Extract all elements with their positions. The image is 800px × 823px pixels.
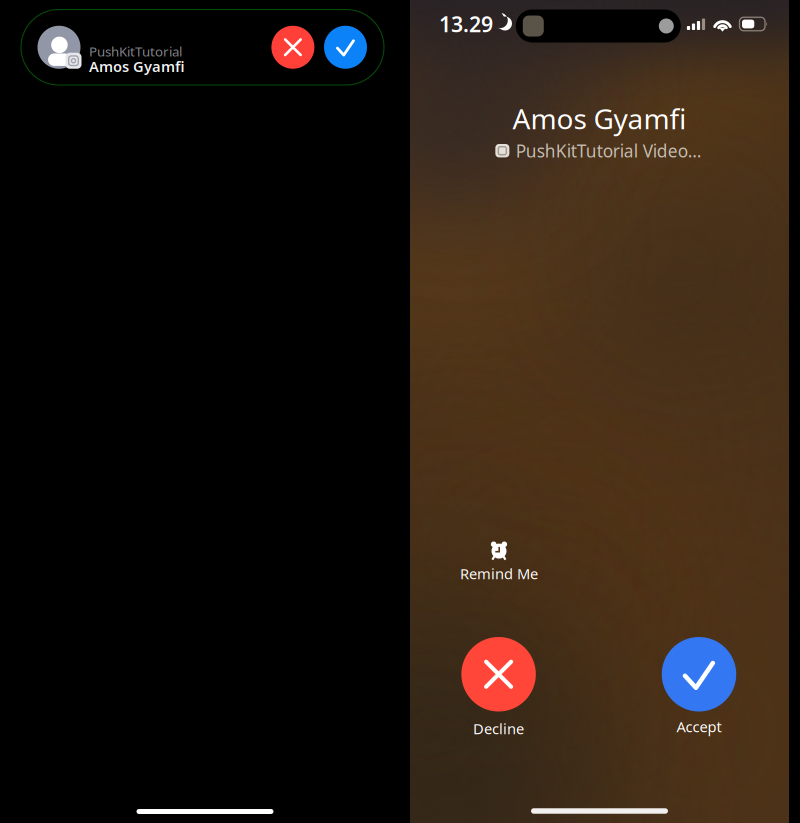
button[interactable]: Decline — [444, 637, 554, 737]
button[interactable]: Remind Me — [444, 539, 554, 585]
button[interactable]: Accept — [324, 26, 367, 69]
staticText: Decline — [473, 719, 524, 738]
staticText: PushKitTutorial Video… — [516, 139, 702, 162]
button[interactable]: Accept — [644, 637, 754, 737]
button[interactable]: Decline — [271, 26, 314, 69]
staticText: Accept — [676, 717, 721, 736]
staticText: Amos Gyamfi — [89, 56, 185, 76]
staticText: Remind Me — [460, 564, 538, 583]
staticText: 13.29 — [439, 10, 493, 38]
staticText: PushKitTutorial — [89, 42, 182, 60]
staticText: Amos Gyamfi — [512, 100, 686, 137]
